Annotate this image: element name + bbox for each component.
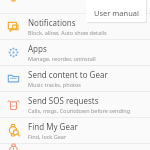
- staticText: Apps: [28, 43, 47, 54]
- staticText: Notifications: [28, 17, 76, 28]
- button[interactable]: User manual: [86, 4, 146, 22]
- staticText: User manual: [94, 8, 139, 18]
- staticText: Music tracks, photos: [28, 81, 81, 88]
- staticText: Block, allow, Auto show details: [28, 29, 107, 36]
- button[interactable]: Notifications: [0, 14, 150, 39]
- staticText: Find, lock Gear: [28, 133, 67, 140]
- staticText: Send content to Gear: [28, 69, 108, 80]
- staticText: Find My Gear: [28, 121, 78, 132]
- button[interactable]: Send content to Gear: [0, 66, 150, 91]
- staticText: Calls, msgs, Countdown before sending: [28, 107, 131, 114]
- button[interactable]: Send SOS requests: [0, 92, 150, 117]
- staticText: Send SOS requests: [28, 95, 99, 106]
- button[interactable]: Find My Gear: [0, 118, 150, 143]
- staticText: Manage, reorder, uninstall: [28, 55, 96, 62]
- button[interactable]: Apps: [0, 40, 150, 65]
- button[interactable]: Samsung Health: [0, 144, 150, 150]
- button[interactable]: Watch faces: [0, 0, 150, 1]
